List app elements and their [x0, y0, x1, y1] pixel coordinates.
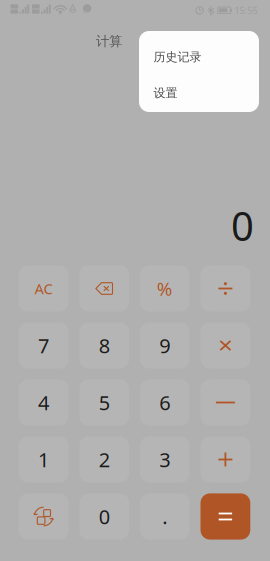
button[interactable]: 设置 — [139, 75, 259, 111]
button[interactable]: 5 — [79, 379, 129, 426]
button[interactable] — [200, 493, 250, 540]
staticText: 设置 — [153, 86, 177, 100]
button[interactable]: AC — [19, 265, 68, 312]
staticText: 4 — [38, 389, 49, 416]
staticText: 历史记录 — [153, 50, 201, 64]
button[interactable] — [200, 322, 250, 369]
staticText: 9 — [159, 332, 170, 359]
button[interactable]: 1 — [19, 436, 68, 483]
button[interactable]: . — [140, 493, 190, 540]
button[interactable]: 9 — [140, 322, 190, 369]
button[interactable]: 0 — [79, 493, 129, 540]
button[interactable] — [200, 265, 250, 312]
staticText: 6 — [159, 389, 170, 416]
button[interactable] — [200, 379, 250, 426]
staticText: 0 — [99, 503, 110, 530]
staticText: % — [157, 276, 173, 301]
button[interactable] — [19, 493, 68, 540]
staticText: 8 — [99, 332, 110, 359]
button[interactable]: 6 — [140, 379, 190, 426]
button[interactable]: % — [140, 265, 190, 312]
staticText: 计算 — [96, 33, 122, 49]
staticText: 0 — [231, 199, 254, 252]
staticText: 5 — [99, 389, 110, 416]
staticText: AC — [35, 279, 53, 298]
button[interactable] — [200, 436, 250, 483]
button[interactable]: 8 — [79, 322, 129, 369]
staticText: 7 — [38, 332, 49, 359]
button[interactable]: 3 — [140, 436, 190, 483]
button[interactable]: 7 — [19, 322, 68, 369]
button[interactable] — [79, 265, 129, 312]
staticText: . — [162, 503, 167, 530]
button[interactable]: 4 — [19, 379, 68, 426]
staticText: 2 — [99, 446, 110, 473]
button[interactable]: 历史记录 — [139, 39, 259, 75]
staticText: 1 — [38, 446, 49, 473]
button[interactable]: 2 — [79, 436, 129, 483]
staticText: 15:55 — [235, 4, 258, 16]
staticText: 3 — [159, 446, 170, 473]
